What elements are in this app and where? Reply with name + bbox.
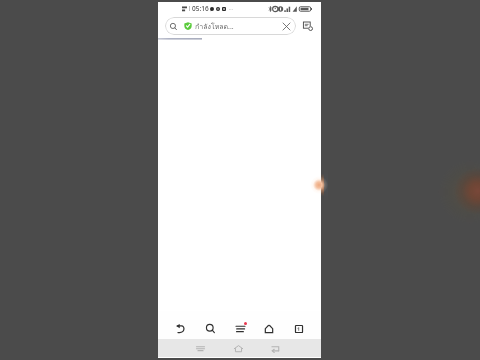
button[interactable]: Back bbox=[268, 341, 282, 355]
button[interactable]: กำลังโหลด... bbox=[165, 17, 296, 35]
button[interactable]: Clear bbox=[281, 21, 292, 32]
button[interactable]: Home bbox=[231, 341, 245, 355]
button[interactable]: Recents bbox=[193, 341, 207, 355]
button[interactable]: Home bbox=[258, 318, 280, 339]
button[interactable]: Back bbox=[169, 318, 191, 339]
button[interactable]: Search bbox=[199, 318, 221, 339]
staticText: กำลังโหลด... bbox=[195, 21, 234, 32]
button[interactable]: Menu bbox=[229, 318, 251, 339]
button[interactable]: Tabs bbox=[288, 318, 310, 339]
staticText: 05:16 bbox=[192, 4, 209, 13]
button[interactable]: Tabs bbox=[300, 18, 315, 33]
staticText: ... bbox=[229, 5, 234, 12]
